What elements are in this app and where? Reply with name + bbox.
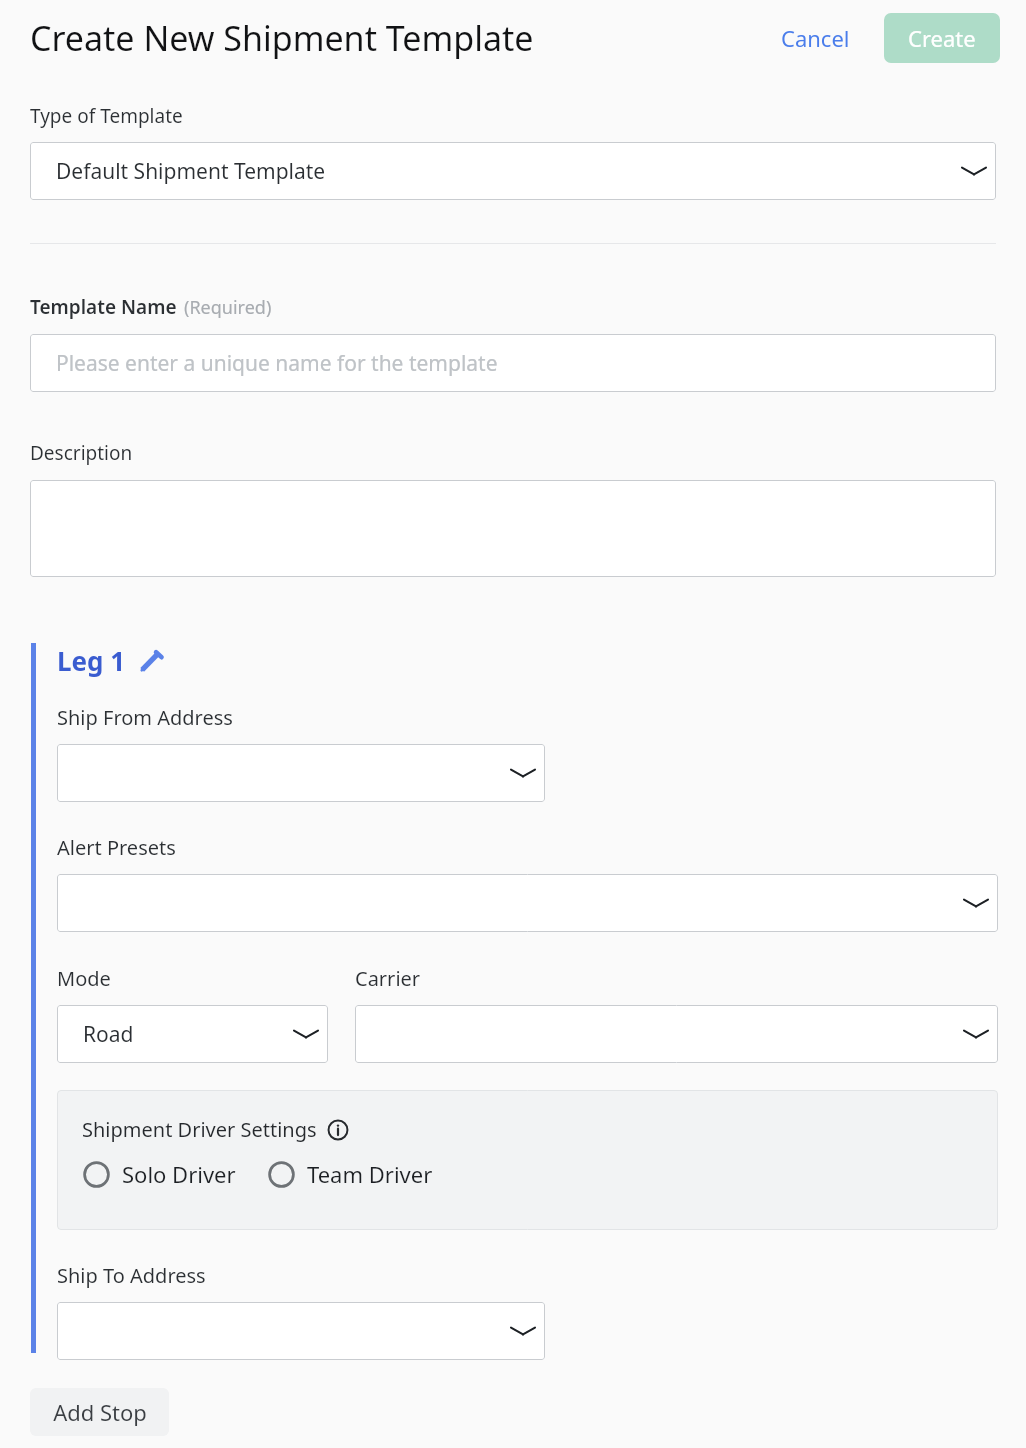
button[interactable]	[30, 480, 996, 577]
button[interactable]	[57, 1302, 545, 1360]
staticText: Alert Presets	[57, 834, 176, 861]
button[interactable]: Leg 1	[57, 643, 164, 678]
staticText: Type of Template	[30, 103, 183, 129]
button[interactable]	[57, 744, 545, 802]
staticText: Ship From Address	[57, 704, 233, 731]
button[interactable]: Solo Driver	[82, 1159, 236, 1189]
button[interactable]: Add Stop	[30, 1388, 169, 1436]
staticText: Please enter a unique name for the templ…	[56, 349, 498, 378]
staticText: Shipment Driver Settings	[82, 1116, 317, 1143]
staticText: Template Name	[30, 294, 177, 320]
staticText: Add Stop	[53, 1397, 147, 1427]
staticText: Road	[83, 1020, 134, 1049]
button[interactable]: Default Shipment Template	[30, 142, 996, 200]
staticText: Create New Shipment Template	[30, 15, 534, 61]
button[interactable]: Create	[884, 13, 1000, 63]
button[interactable]: Please enter a unique name for the templ…	[30, 334, 996, 392]
staticText: Mode	[57, 965, 111, 992]
button[interactable]	[57, 874, 998, 932]
button[interactable]: Cancel	[773, 17, 858, 59]
staticText: Cancel	[781, 23, 850, 53]
staticText: Leg 1	[57, 643, 126, 678]
staticText: Solo Driver	[122, 1159, 236, 1189]
staticText: Description	[30, 440, 133, 466]
staticText: Default Shipment Template	[56, 157, 326, 186]
staticText: Team Driver	[307, 1159, 433, 1189]
staticText: Carrier	[355, 965, 421, 992]
staticText: (Required)	[184, 295, 272, 320]
staticText: Create	[908, 23, 976, 53]
other: Edit leg name	[138, 648, 164, 674]
other: Shipment driver settings info	[327, 1119, 349, 1141]
button[interactable]: Road	[57, 1005, 328, 1063]
staticText: Ship To Address	[57, 1262, 206, 1289]
button[interactable]: Team Driver	[267, 1159, 433, 1189]
button[interactable]	[355, 1005, 998, 1063]
